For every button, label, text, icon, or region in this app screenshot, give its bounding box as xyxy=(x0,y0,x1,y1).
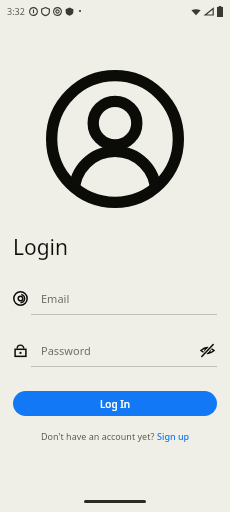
button[interactable]: Log In xyxy=(13,391,217,416)
staticText: Password xyxy=(41,343,91,358)
button[interactable]: Show password xyxy=(197,340,217,360)
staticText: 3:32 xyxy=(7,5,25,17)
staticText: Log In xyxy=(100,397,131,411)
staticText: Login xyxy=(13,233,69,262)
staticText: Sign up xyxy=(157,430,190,442)
staticText: Email xyxy=(41,291,70,306)
button[interactable]: Password xyxy=(0,333,230,367)
button[interactable]: Email xyxy=(0,281,230,315)
staticText: Don't have an account yet? xyxy=(41,430,157,442)
button[interactable]: Sign up xyxy=(157,430,190,442)
